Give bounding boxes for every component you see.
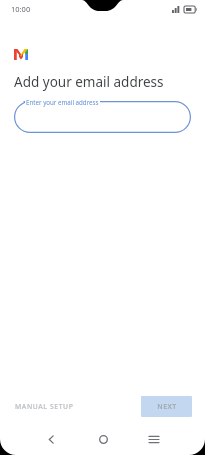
staticText: 10:00 bbox=[11, 4, 31, 14]
button[interactable]: Enter your email address bbox=[14, 101, 191, 133]
button[interactable]: Back bbox=[38, 426, 64, 452]
button[interactable]: Recent apps bbox=[141, 426, 167, 452]
button[interactable]: MANUAL SETUP bbox=[14, 399, 75, 414]
staticText: Add your email address bbox=[14, 73, 164, 91]
staticText: MANUAL SETUP bbox=[15, 402, 74, 411]
button[interactable]: Home bbox=[90, 426, 116, 452]
staticText: NEXT bbox=[157, 402, 177, 412]
button[interactable]: NEXT bbox=[141, 396, 192, 417]
staticText: Enter your email address bbox=[26, 98, 99, 106]
